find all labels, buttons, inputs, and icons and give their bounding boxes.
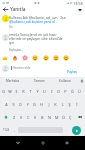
button[interactable]: Comma [12,123,17,136]
button[interactable]: Merhaba [0,77,26,85]
staticText: Q [2,89,5,94]
staticText: P [64,89,67,94]
button[interactable]: Blossom emoji [22,55,28,61]
staticText: Yanıtla [10,6,26,13]
staticText: Paylaş [67,69,77,73]
button[interactable]: X [18,111,25,123]
button[interactable]: Ç [67,111,74,123]
button[interactable]: N [46,111,53,123]
button[interactable]: Ğ [69,85,76,98]
staticText: R [22,89,25,94]
staticText: F [27,102,29,107]
staticText: , [14,127,15,132]
staticText: Z [13,115,16,120]
staticText: X [20,115,23,120]
button[interactable]: Z [11,111,18,123]
staticText: Paylaşılan... [9,48,24,52]
button[interactable]: Back [12,137,24,149]
button[interactable]: Profile picture [2,15,9,22]
button[interactable]: V [32,111,39,123]
button[interactable]: Crown emoji [2,55,8,61]
staticText: Ğ [71,89,74,94]
button[interactable]: L [59,98,66,111]
button[interactable]: O [55,85,62,98]
staticText: . [66,127,67,132]
button[interactable]: Back [0,6,10,13]
staticText: ellerinle ve paylaşım sihir altoriZde [9,36,63,40]
staticText: N [48,115,51,120]
staticText: W [8,89,12,94]
button[interactable]: Ş [66,98,73,111]
button[interactable]: Send [72,126,81,135]
staticText: On [9,25,13,29]
button[interactable]: J [45,98,52,111]
button[interactable]: G [31,98,38,111]
staticText: Kullanıcı [59,79,72,83]
staticText: S [12,102,15,107]
button[interactable]: İ [73,98,80,111]
staticText: T [29,89,32,94]
staticText: Kullanıcı Adı @kullanici_adi_uzn · 2sa [9,15,66,19]
staticText: C [27,115,30,120]
button[interactable]: Q [0,85,6,98]
staticText: E [15,89,18,94]
staticText: Ş [68,102,71,107]
button[interactable]: Recents [61,137,73,149]
button[interactable]: D [17,98,24,111]
staticText: ?123 [3,128,10,132]
staticText: Tamam [34,79,45,83]
button[interactable]: K [52,98,59,111]
button[interactable]: B [39,111,46,123]
button[interactable]: Reply audience [74,6,85,13]
staticText: J [48,102,50,107]
button[interactable]: T [27,85,34,98]
button[interactable]: Ü [76,85,83,98]
button[interactable]: Voice input [78,77,85,85]
button[interactable]: Emoji [32,55,38,61]
staticText: İ [76,102,78,107]
button[interactable]: Profile picture [2,34,9,41]
button[interactable]: Emoji [53,55,59,61]
button[interactable]: P [62,85,69,98]
staticText: I [51,89,53,94]
button[interactable]: Emoji [43,55,49,61]
staticText: M [55,115,59,120]
button[interactable]: Home [37,137,49,149]
button[interactable]: Ö [60,111,67,123]
button[interactable]: Paylaş [66,68,78,74]
button[interactable]: Emoji [63,55,69,61]
button[interactable]: C [25,111,32,123]
button[interactable]: E [13,85,20,98]
button[interactable]: H [38,98,45,111]
button[interactable]: S [10,98,17,111]
button[interactable]: Backspace [74,111,85,123]
button[interactable]: Y [34,85,41,98]
button[interactable]: Kullanıcı [52,77,78,85]
staticText: H [40,102,43,107]
button[interactable]: M [53,111,60,123]
staticText: @kullanici_adi kişisine yanıt ol [9,19,56,23]
staticText: Ç [69,115,72,120]
staticText: G [33,102,36,107]
staticText: Yanıtını ekle [13,66,31,70]
button[interactable]: Profile picture [2,65,9,72]
button[interactable]: Tamam [26,77,52,85]
button[interactable]: ?123 [1,123,11,136]
button[interactable]: W [6,85,13,98]
staticText: emeLa Sonuçlandı en çok hazır [9,32,57,36]
button[interactable]: U [41,85,48,98]
staticText: B [41,115,44,120]
button[interactable]: I [48,85,55,98]
staticText: Y [36,89,39,94]
button[interactable]: F [24,98,31,111]
button[interactable]: Shift [0,111,11,123]
button[interactable]: A [2,98,10,111]
staticText: Ö [62,115,65,120]
staticText: O [57,89,60,94]
staticText: Merhaba [6,79,20,83]
button[interactable]: R [20,85,27,98]
staticText: 13:58 [73,1,83,6]
button[interactable]: Fire emoji [12,55,18,61]
